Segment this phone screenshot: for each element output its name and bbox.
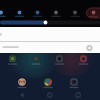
- button[interactable]: Settings: [85, 44, 95, 53]
- button[interactable]: Battery Saver: [86, 8, 100, 18]
